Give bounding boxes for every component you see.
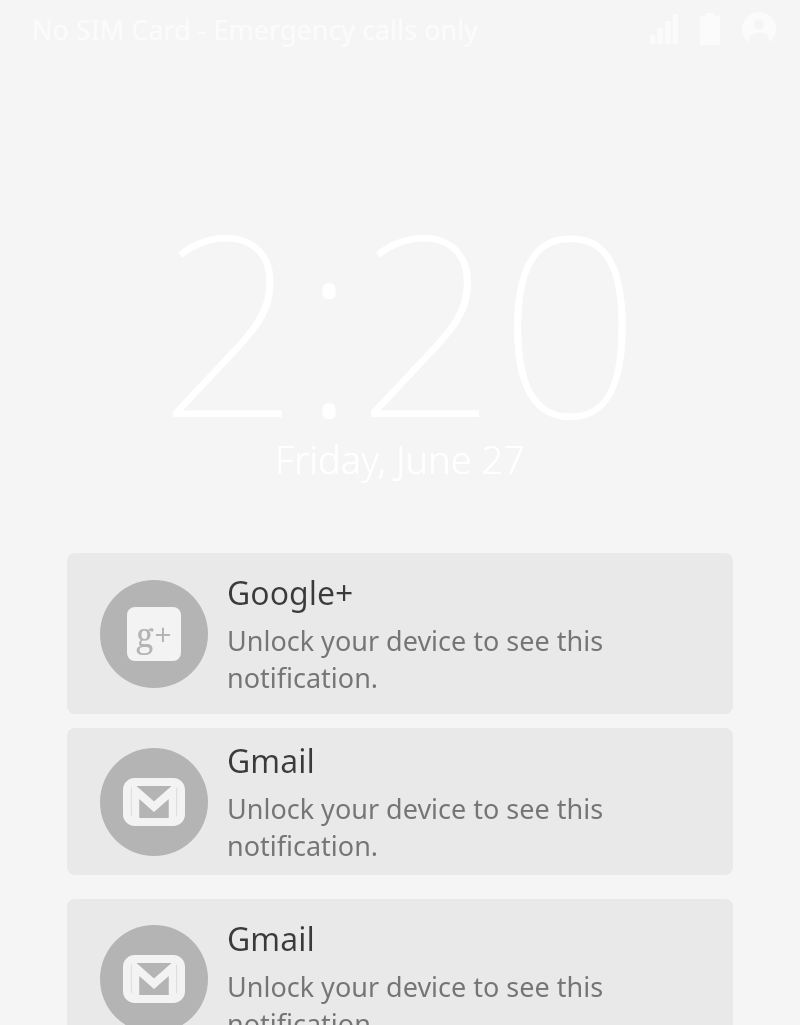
- staticText: Gmail: [227, 739, 315, 783]
- staticText: g+: [136, 612, 173, 657]
- staticText: Unlock your device to see this notificat…: [227, 622, 733, 696]
- staticText: Unlock your device to see this notificat…: [227, 968, 733, 1025]
- button[interactable]: Gmail: [67, 728, 733, 875]
- button[interactable]: Gmail: [67, 899, 733, 1025]
- staticText: Gmail: [227, 917, 315, 961]
- staticText: Unlock your device to see this notificat…: [227, 790, 733, 864]
- staticText: Google+: [227, 571, 354, 615]
- button[interactable]: g+: [67, 553, 733, 714]
